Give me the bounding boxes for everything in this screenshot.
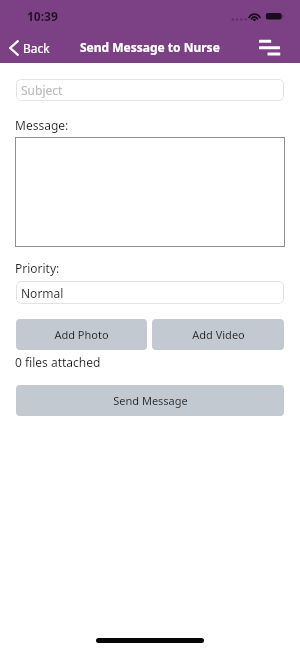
staticText: Priority:: [15, 260, 60, 276]
staticText: Send Message to Nurse: [80, 39, 220, 55]
staticText: 10:39: [27, 8, 58, 24]
staticText: Back: [23, 40, 50, 56]
button[interactable]: Add Video: [152, 319, 284, 350]
staticText: Message:: [15, 117, 69, 133]
button[interactable]: Send Message: [16, 385, 284, 416]
staticText: Normal: [21, 285, 64, 301]
button[interactable]: [15, 137, 285, 247]
staticText: Add Photo: [54, 327, 109, 342]
staticText: Send Message: [113, 393, 188, 408]
button[interactable]: Menu: [252, 32, 288, 62]
staticText: Add Video: [192, 327, 245, 342]
button[interactable]: Add Photo: [16, 319, 147, 350]
button[interactable]: Normal: [16, 281, 284, 304]
button[interactable]: Subject: [16, 79, 284, 101]
button[interactable]: Back: [5, 34, 58, 60]
staticText: Subject: [21, 82, 63, 98]
staticText: 0 files attached: [15, 354, 101, 370]
